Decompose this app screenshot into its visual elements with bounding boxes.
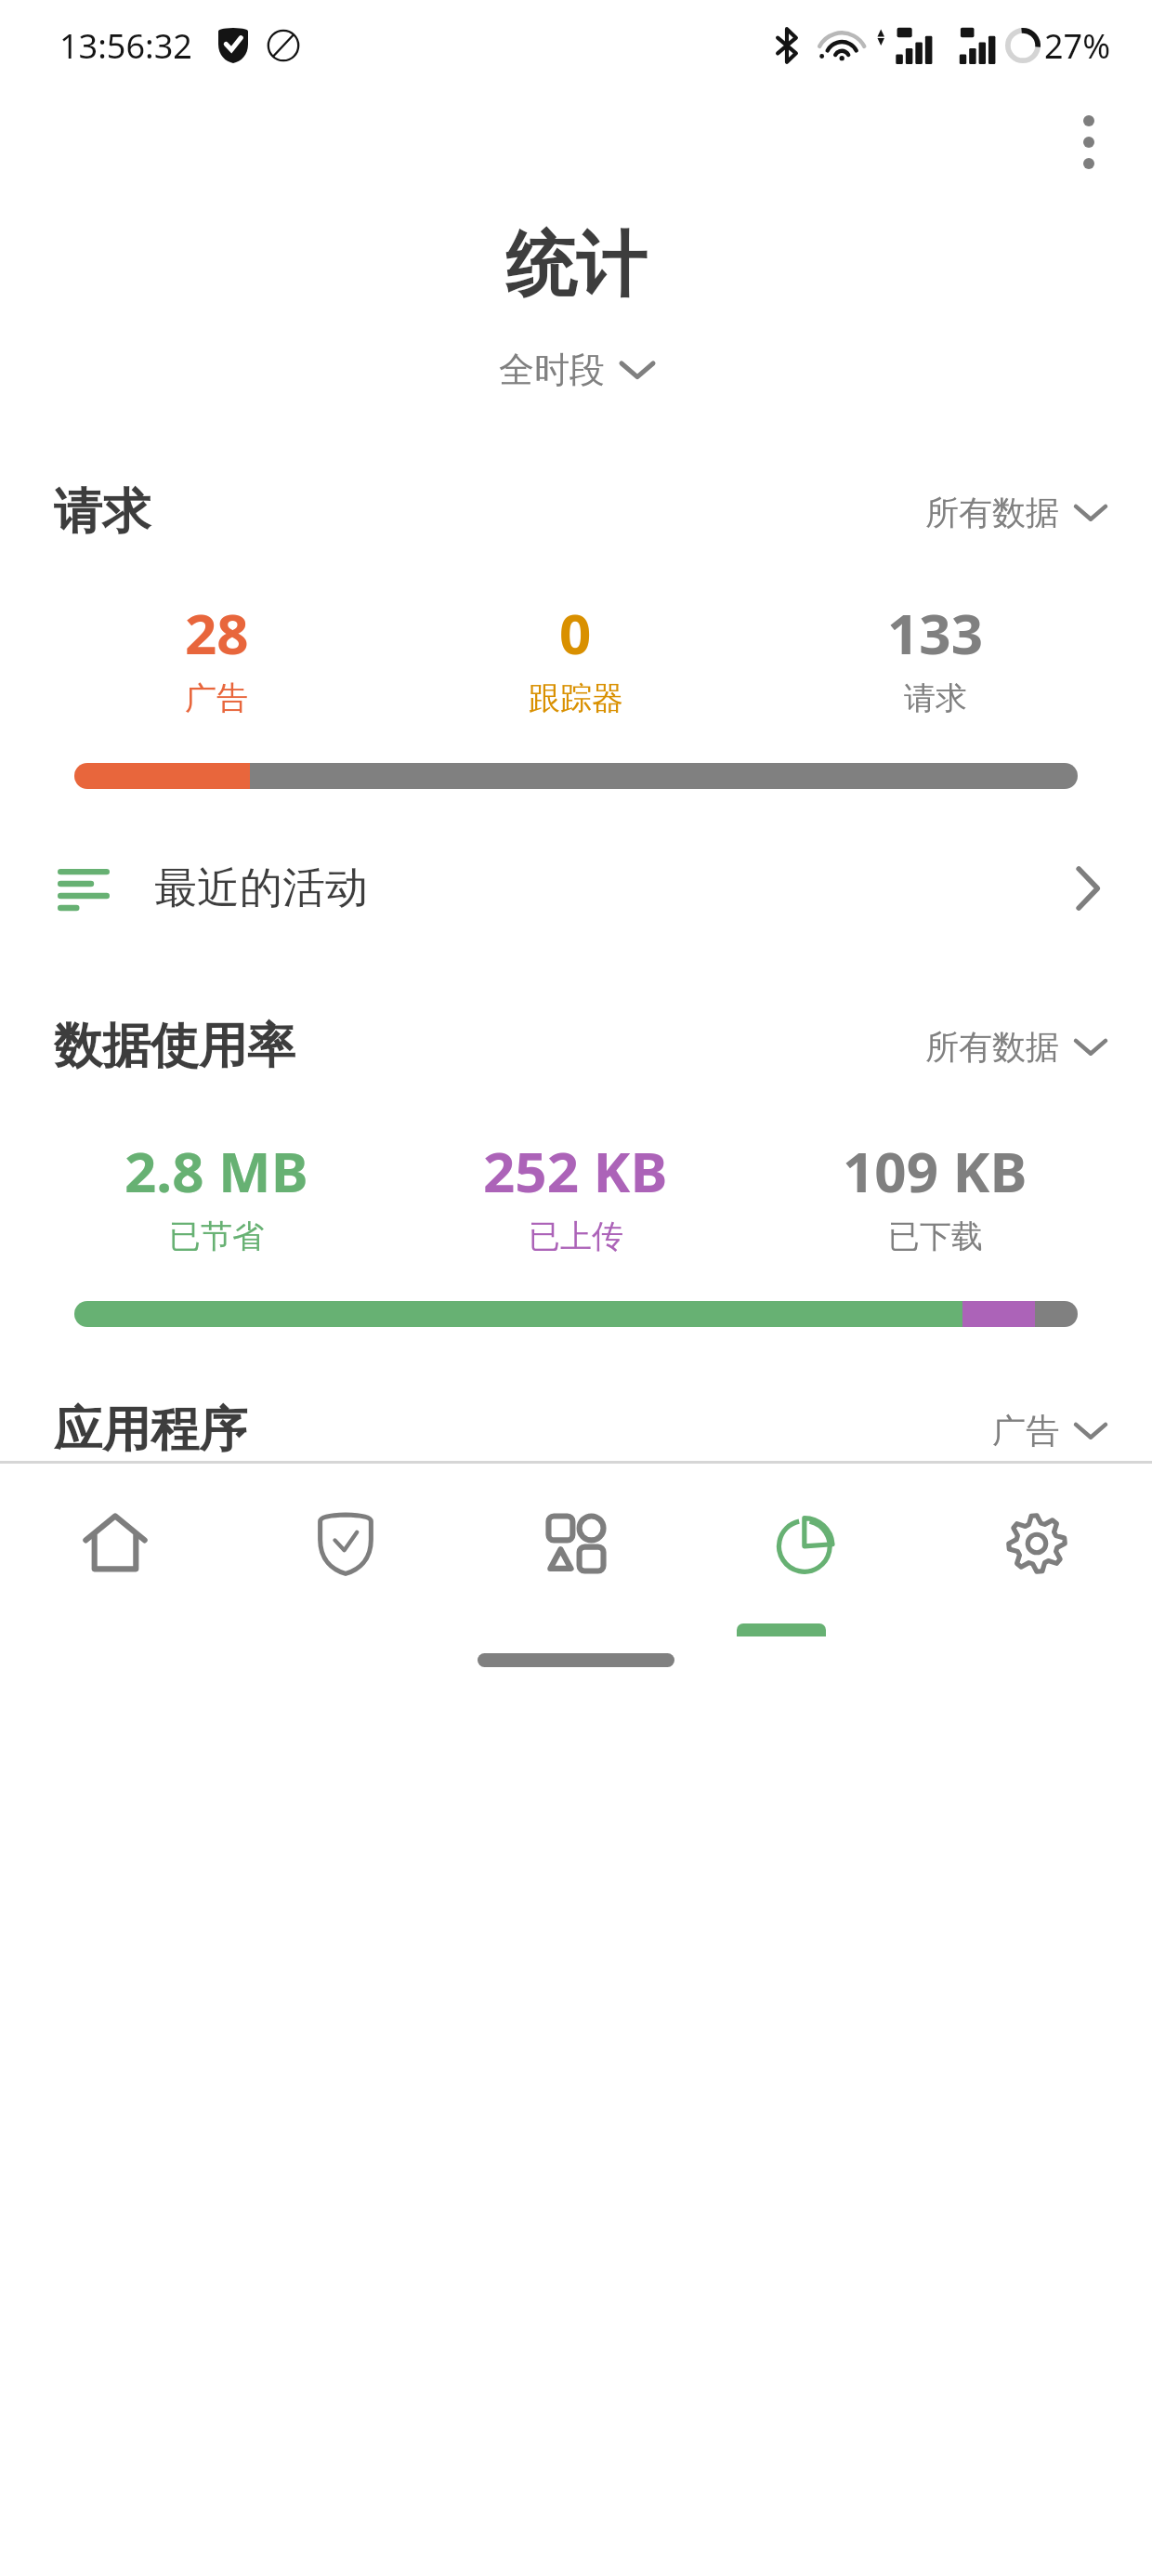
- button[interactable]: 109 KB: [755, 1133, 1115, 1256]
- staticText: 133: [887, 595, 983, 671]
- staticText: 已上传: [529, 1216, 623, 1256]
- button[interactable]: Statistics: [691, 1464, 922, 1623]
- button[interactable]: 2.8 MB: [37, 1133, 396, 1256]
- button[interactable]: 133: [755, 595, 1115, 718]
- staticText: 所有数据: [925, 492, 1059, 533]
- button[interactable]: Protection: [230, 1464, 461, 1623]
- staticText: 所有数据: [925, 1026, 1059, 1068]
- button[interactable]: 252 KB: [396, 1133, 755, 1256]
- staticText: 最近的活动: [154, 861, 368, 915]
- staticText: 0: [559, 595, 592, 671]
- button[interactable]: Home: [0, 1464, 230, 1623]
- button[interactable]: Apps: [461, 1464, 691, 1623]
- button[interactable]: 广告: [979, 1400, 1119, 1461]
- staticText: 统计: [0, 221, 1152, 310]
- staticText: 28: [185, 595, 249, 671]
- staticText: 已下载: [888, 1216, 983, 1256]
- staticText: 广告: [185, 678, 248, 718]
- staticText: 跟踪器: [529, 678, 623, 718]
- button[interactable]: 所有数据: [912, 482, 1119, 543]
- staticText: 已节省: [169, 1216, 264, 1256]
- staticText: 13:56:32: [59, 23, 192, 69]
- button[interactable]: 最近的活动: [0, 847, 1152, 930]
- staticText: 27%: [1044, 23, 1111, 69]
- staticText: 全时段: [499, 348, 605, 392]
- staticText: 252 KB: [483, 1133, 668, 1209]
- button[interactable]: 所有数据: [912, 1017, 1119, 1077]
- staticText: 数据使用率: [54, 1016, 295, 1077]
- staticText: 广告: [992, 1410, 1059, 1452]
- button[interactable]: More options: [1050, 91, 1128, 193]
- staticText: 请求: [904, 678, 967, 718]
- staticText: 应用程序: [54, 1400, 247, 1461]
- staticText: 2.8 MB: [124, 1133, 308, 1209]
- button[interactable]: 28: [37, 595, 396, 718]
- staticText: 请求: [54, 481, 151, 543]
- staticText: 109 KB: [843, 1133, 1028, 1209]
- button[interactable]: 0: [396, 595, 755, 718]
- button[interactable]: 全时段: [480, 338, 672, 401]
- button[interactable]: Settings: [922, 1464, 1152, 1623]
